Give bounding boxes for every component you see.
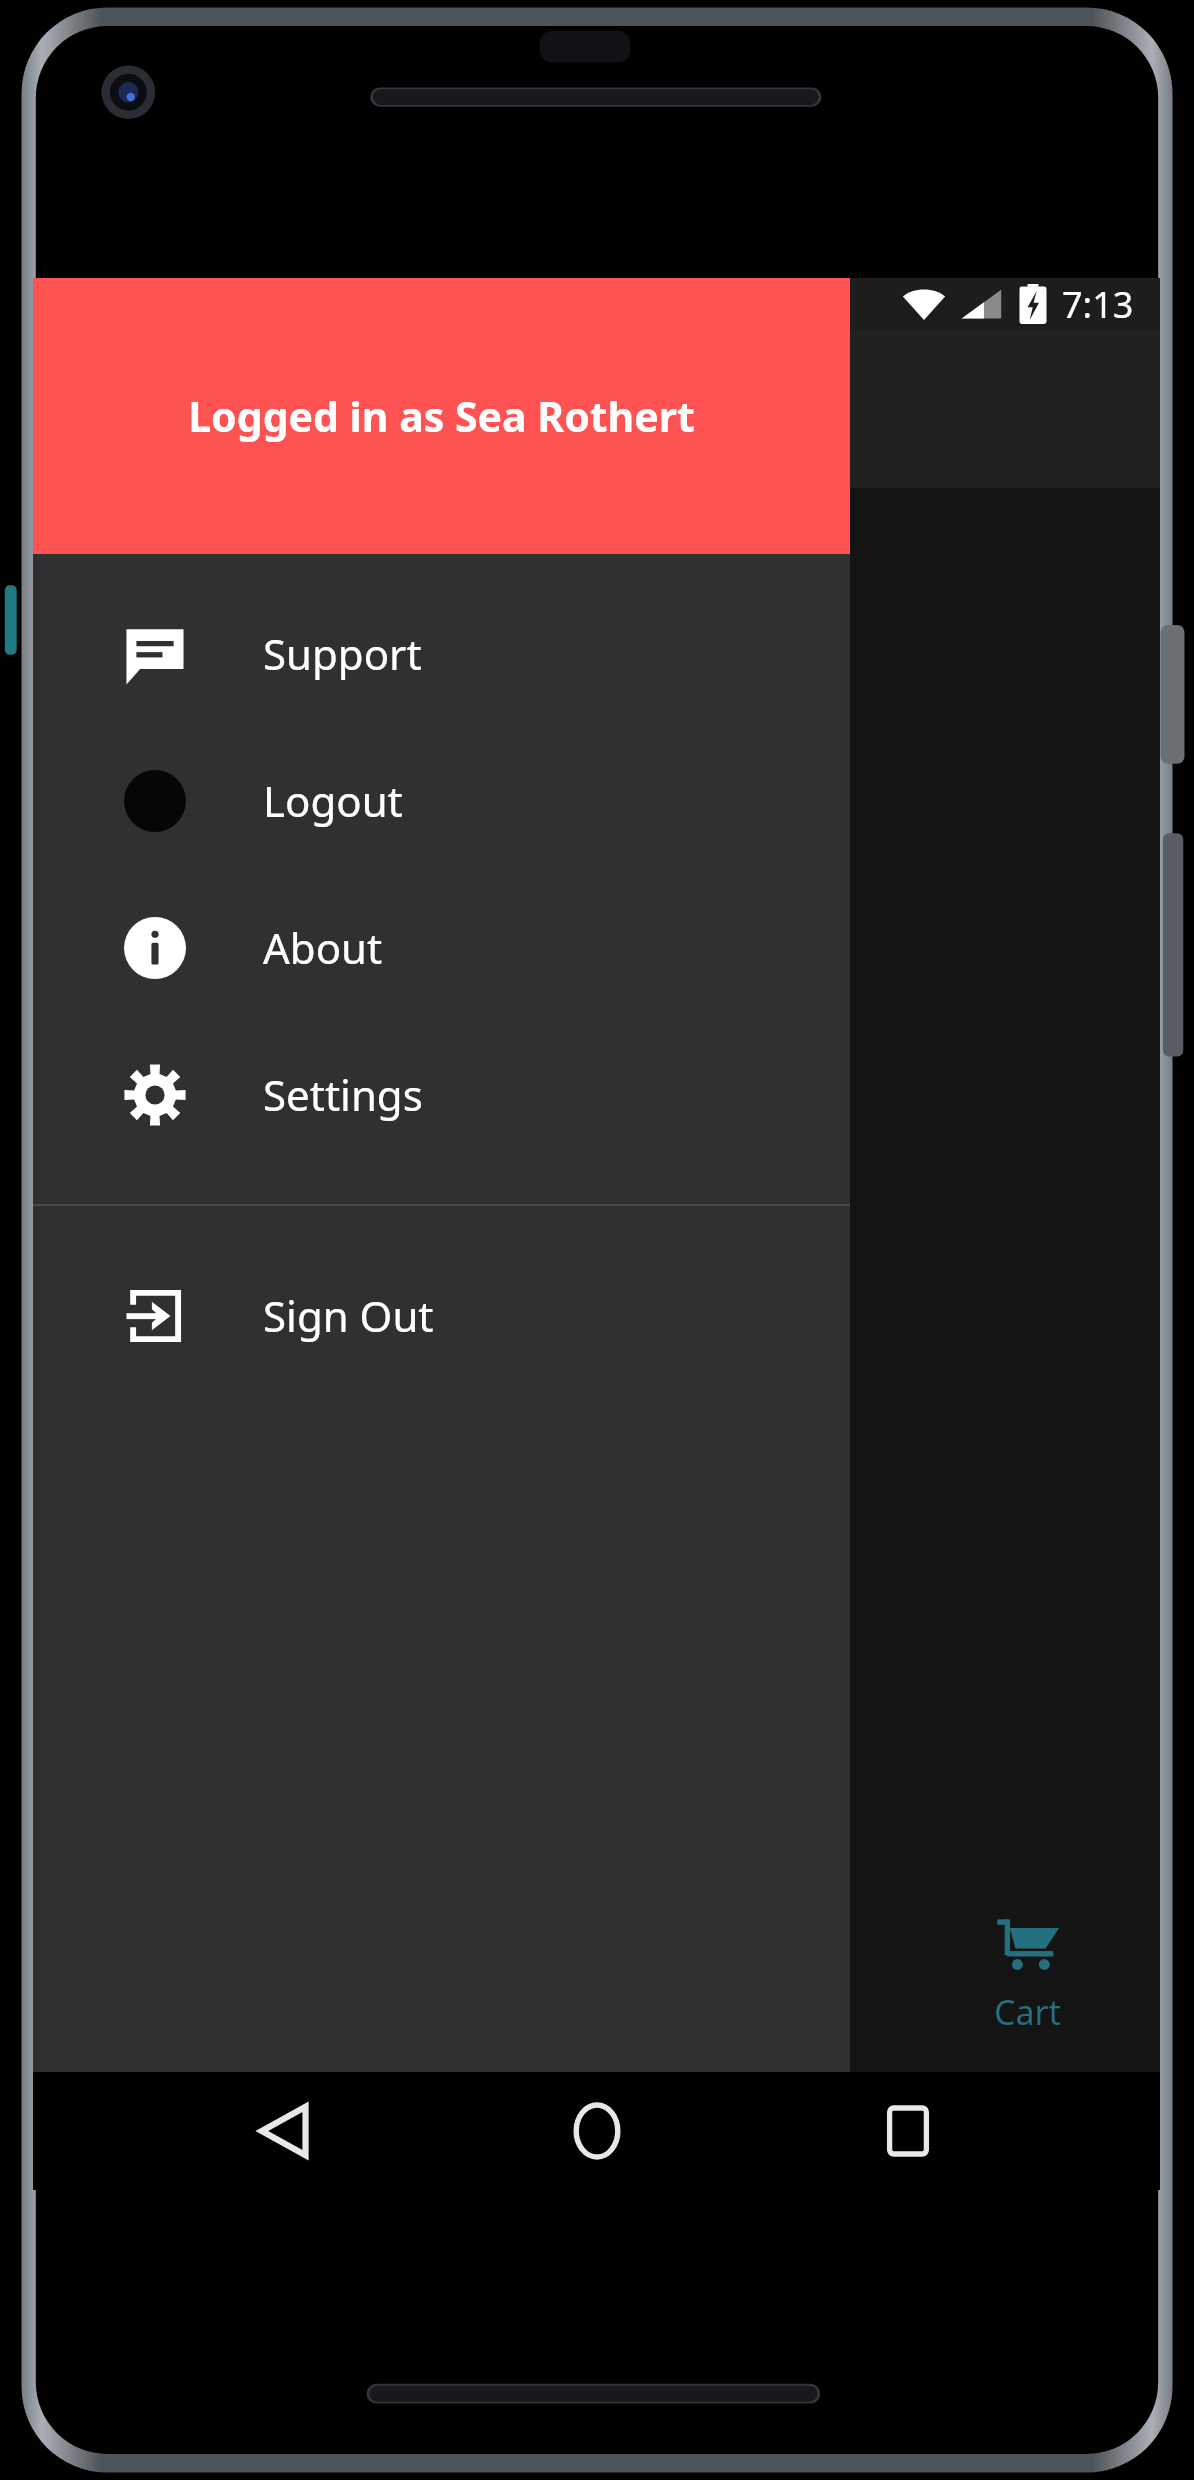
staticText: Logout bbox=[263, 772, 403, 829]
button[interactable]: Recent apps bbox=[848, 2072, 968, 2190]
staticText: Settings bbox=[263, 1066, 423, 1123]
staticText: Cart bbox=[994, 1989, 1061, 2035]
staticText: Sign Out bbox=[263, 1287, 434, 1344]
button[interactable]: Logged in as Sea Rothert bbox=[33, 278, 850, 554]
button[interactable]: Logout bbox=[33, 727, 850, 874]
button[interactable]: Cart bbox=[932, 1894, 1122, 2054]
button[interactable]: Home bbox=[537, 2072, 657, 2190]
button[interactable]: Settings bbox=[33, 1021, 850, 1168]
button[interactable]: About bbox=[33, 874, 850, 1021]
button[interactable]: Support bbox=[33, 580, 850, 727]
button[interactable]: Sign Out bbox=[33, 1242, 850, 1389]
staticText: Support bbox=[263, 625, 422, 682]
staticText: Logged in as Sea Rothert bbox=[188, 388, 695, 444]
staticText: 7:13 bbox=[1062, 280, 1134, 329]
button[interactable]: Back bbox=[225, 2072, 345, 2190]
staticText: About bbox=[263, 919, 383, 976]
